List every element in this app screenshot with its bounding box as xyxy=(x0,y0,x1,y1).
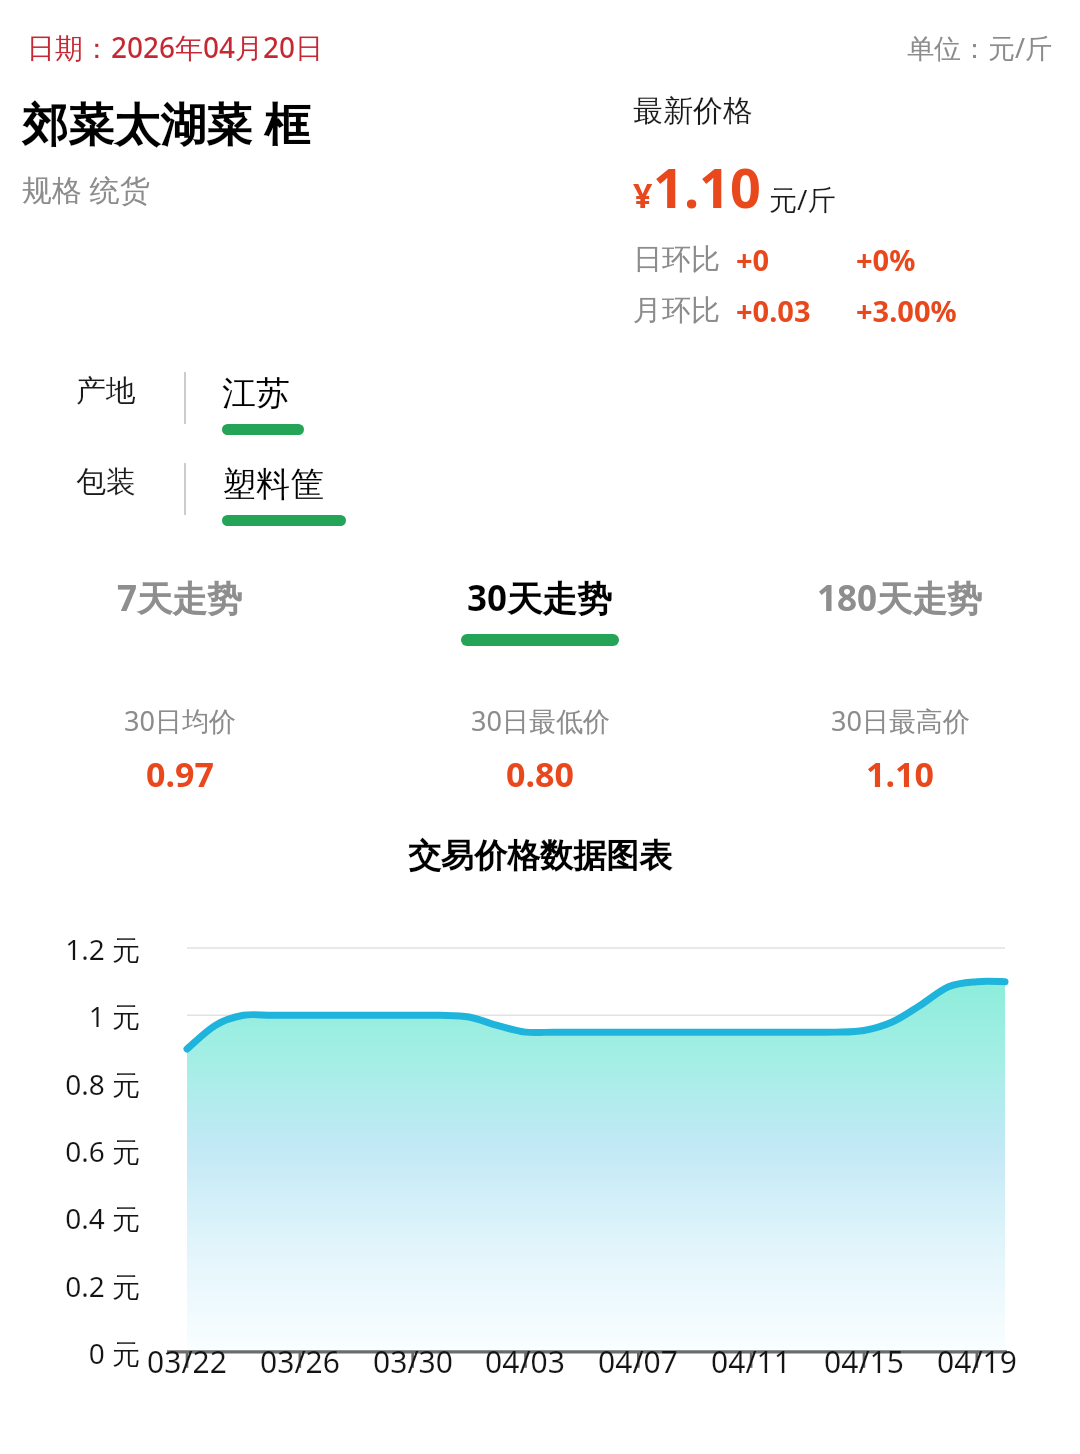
staticText: +3.00% xyxy=(856,291,957,330)
staticText: 0.4 元 xyxy=(0,1199,140,1237)
staticText: 塑料筐 xyxy=(222,463,324,506)
staticText: +0.03 xyxy=(736,291,811,330)
staticText: 0.97 xyxy=(146,751,214,797)
staticText: 30日最高价 xyxy=(831,702,970,739)
button[interactable]: 180天走势 xyxy=(720,574,1080,646)
staticText: +0% xyxy=(856,240,916,279)
staticText: 郊菜太湖菜 框 xyxy=(22,92,310,155)
staticText: 0.2 元 xyxy=(0,1267,140,1305)
staticText: 1.10 xyxy=(653,150,761,224)
staticText: 7天走势 xyxy=(117,574,243,622)
staticText: 30日最低价 xyxy=(471,702,610,739)
staticText: 0.80 xyxy=(506,751,574,797)
staticText: 单位：元/斤 xyxy=(907,29,1053,66)
staticText: 规格 统货 xyxy=(22,169,150,210)
staticText: 交易价格数据图表 xyxy=(0,835,1080,877)
staticText: 月环比 xyxy=(633,292,720,329)
staticText: 180天走势 xyxy=(817,574,983,622)
staticText: 03/22 xyxy=(125,1341,249,1382)
staticText: 元/斤 xyxy=(769,180,836,218)
staticText: 最新价格 xyxy=(633,92,753,130)
staticText: 04/15 xyxy=(802,1341,926,1382)
staticText: 30日均价 xyxy=(124,702,236,739)
staticText: 包装 xyxy=(76,463,136,501)
staticText: +0 xyxy=(736,240,770,279)
staticText: 日期：2026年04月20日 xyxy=(27,28,324,66)
staticText: 1.2 元 xyxy=(0,930,140,968)
staticText: 日环比 xyxy=(633,241,720,278)
staticText: ¥ xyxy=(633,172,653,218)
button[interactable]: 7天走势 xyxy=(0,574,360,646)
staticText: 1.10 xyxy=(866,751,934,797)
button[interactable]: 30天走势 xyxy=(360,574,720,646)
staticText: 04/07 xyxy=(576,1341,700,1382)
staticText: 产地 xyxy=(76,372,136,410)
staticText: 30天走势 xyxy=(467,574,613,622)
staticText: 03/30 xyxy=(351,1341,475,1382)
staticText: 04/11 xyxy=(689,1341,813,1382)
staticText: 04/03 xyxy=(463,1341,587,1382)
staticText: 1 元 xyxy=(0,997,140,1035)
button[interactable]: 产地 xyxy=(0,372,1080,435)
staticText: 03/26 xyxy=(238,1341,362,1382)
staticText: 0 元 xyxy=(0,1334,140,1372)
staticText: 0.8 元 xyxy=(0,1065,140,1103)
staticText: 04/19 xyxy=(915,1341,1039,1382)
button[interactable]: 包装 xyxy=(0,463,1080,526)
staticText: 0.6 元 xyxy=(0,1132,140,1170)
staticText: 江苏 xyxy=(222,372,290,415)
